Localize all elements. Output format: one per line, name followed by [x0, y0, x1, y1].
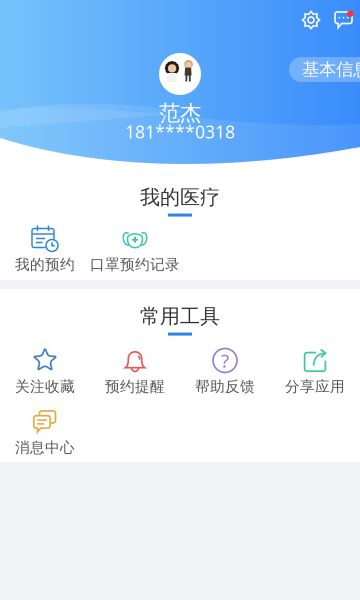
staticText: 消息中心	[15, 438, 75, 456]
button[interactable]: 设置	[294, 3, 328, 37]
staticText: 常用工具	[140, 304, 220, 329]
staticText: 口罩预约记录	[90, 255, 180, 273]
staticText: 我的预约	[15, 255, 75, 273]
button[interactable]: 预约提醒	[90, 347, 180, 395]
staticText: 181****0318	[125, 120, 235, 143]
staticText: 预约提醒	[105, 377, 165, 395]
staticText: 分享应用	[285, 377, 345, 395]
button[interactable]: 消息中心	[327, 3, 360, 37]
button[interactable]: 口罩预约记录	[90, 225, 180, 273]
staticText: 关注收藏	[15, 377, 75, 395]
button[interactable]: ?	[180, 347, 270, 395]
staticText: ?	[221, 348, 229, 373]
button[interactable]: 基本信息	[289, 57, 360, 82]
staticText: 我的医疗	[140, 185, 220, 210]
staticText: 帮助反馈	[195, 377, 255, 395]
staticText: 范杰	[159, 100, 201, 126]
button[interactable]: 关注收藏	[0, 347, 90, 395]
button[interactable]: 分享应用	[270, 347, 360, 395]
staticText: 基本信息	[302, 59, 360, 80]
button[interactable]: 消息中心	[0, 408, 90, 456]
button[interactable]: 我的预约	[0, 225, 90, 273]
